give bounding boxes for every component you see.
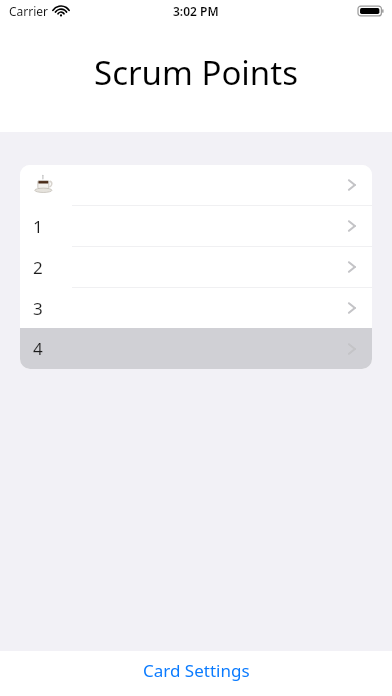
button[interactable]: 4 bbox=[20, 328, 372, 369]
button[interactable]: 2 bbox=[20, 247, 372, 287]
other: Open bbox=[348, 178, 356, 192]
staticText: 1 bbox=[33, 215, 43, 238]
staticText: Carrier bbox=[9, 3, 49, 19]
button[interactable]: 3 bbox=[20, 288, 372, 328]
staticText: 3 bbox=[33, 297, 43, 320]
other: Open bbox=[348, 301, 356, 315]
other: Coffee bbox=[33, 174, 55, 196]
button[interactable]: Card Settings bbox=[127, 651, 266, 690]
other: Open bbox=[348, 260, 356, 274]
staticText: Scrum Points bbox=[94, 50, 298, 95]
button[interactable]: Coffee bbox=[20, 165, 372, 205]
staticText: 4 bbox=[33, 337, 43, 360]
staticText: 2 bbox=[33, 256, 43, 279]
staticText: Card Settings bbox=[143, 659, 250, 682]
staticText: 3:02 PM bbox=[173, 3, 219, 19]
button[interactable]: 1 bbox=[20, 206, 372, 246]
other: Open bbox=[348, 342, 356, 356]
other: Open bbox=[348, 219, 356, 233]
